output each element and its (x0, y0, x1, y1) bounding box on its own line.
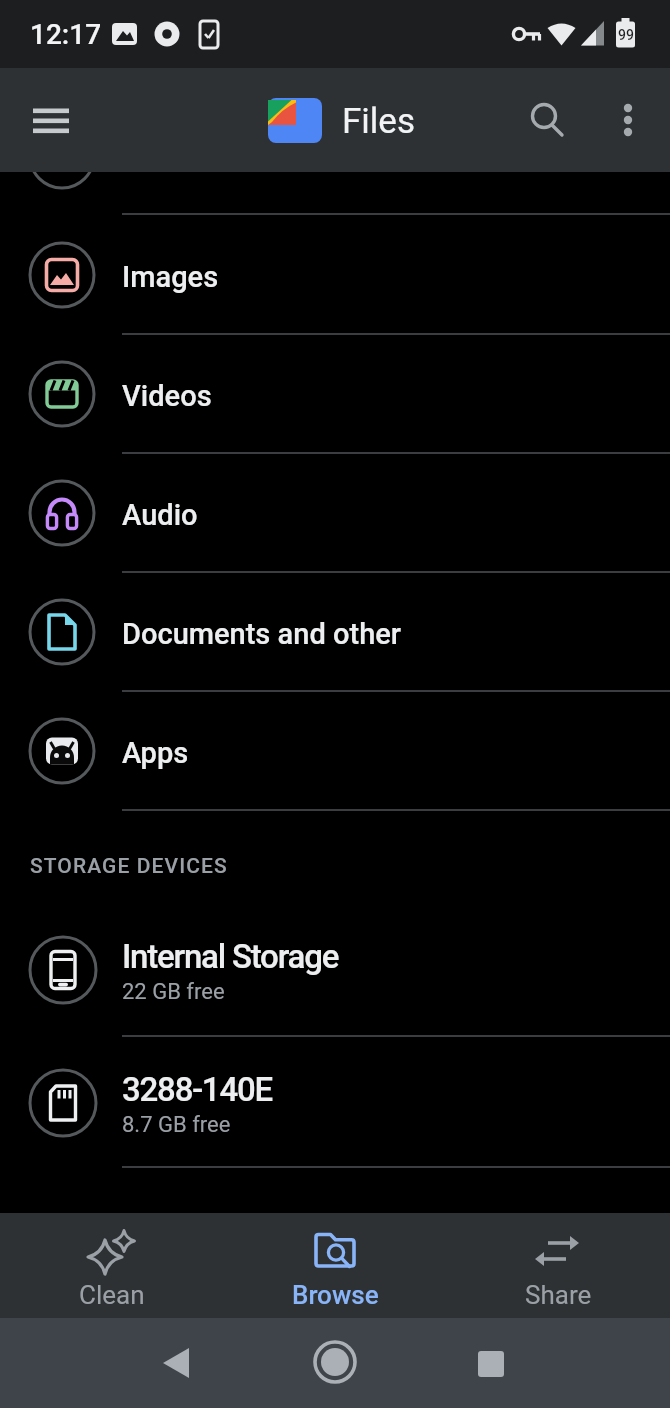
button[interactable] (136, 1323, 216, 1403)
button[interactable]: Documents and other (0, 573, 670, 692)
staticText: Apps (122, 736, 189, 770)
button[interactable]: Apps (0, 692, 670, 811)
button[interactable]: Images (0, 216, 670, 335)
staticText: Files (342, 101, 415, 142)
staticText: Videos (122, 379, 212, 413)
staticText: STORAGE DEVICES (30, 854, 228, 879)
staticText: Share (525, 1280, 592, 1310)
button[interactable] (18, 105, 84, 135)
staticText: 8.7 GB free (122, 1112, 231, 1138)
staticText: 12:17 (30, 18, 102, 51)
staticText: 22 GB free (122, 979, 225, 1005)
staticText: Browse (292, 1280, 379, 1310)
button[interactable]: Audio (0, 454, 670, 573)
button[interactable]: Browse (223, 1213, 447, 1318)
button[interactable] (516, 90, 576, 150)
staticText: Images (122, 260, 219, 294)
staticText: 3288-140E (122, 1070, 272, 1109)
staticText: Documents and other (122, 617, 402, 651)
staticText: Internal Storage (122, 937, 339, 976)
button[interactable]: Share (447, 1213, 670, 1318)
staticText: Audio (122, 498, 198, 532)
button[interactable]: 3288-140E (0, 1037, 670, 1168)
button[interactable]: Videos (0, 335, 670, 454)
staticText: Clean (79, 1280, 145, 1310)
button[interactable]: Clean (0, 1213, 223, 1318)
staticText: 99 (618, 27, 634, 43)
button[interactable] (295, 1323, 375, 1403)
button[interactable] (451, 1323, 531, 1403)
button[interactable] (604, 90, 654, 150)
button[interactable]: Internal Storage (0, 904, 670, 1037)
